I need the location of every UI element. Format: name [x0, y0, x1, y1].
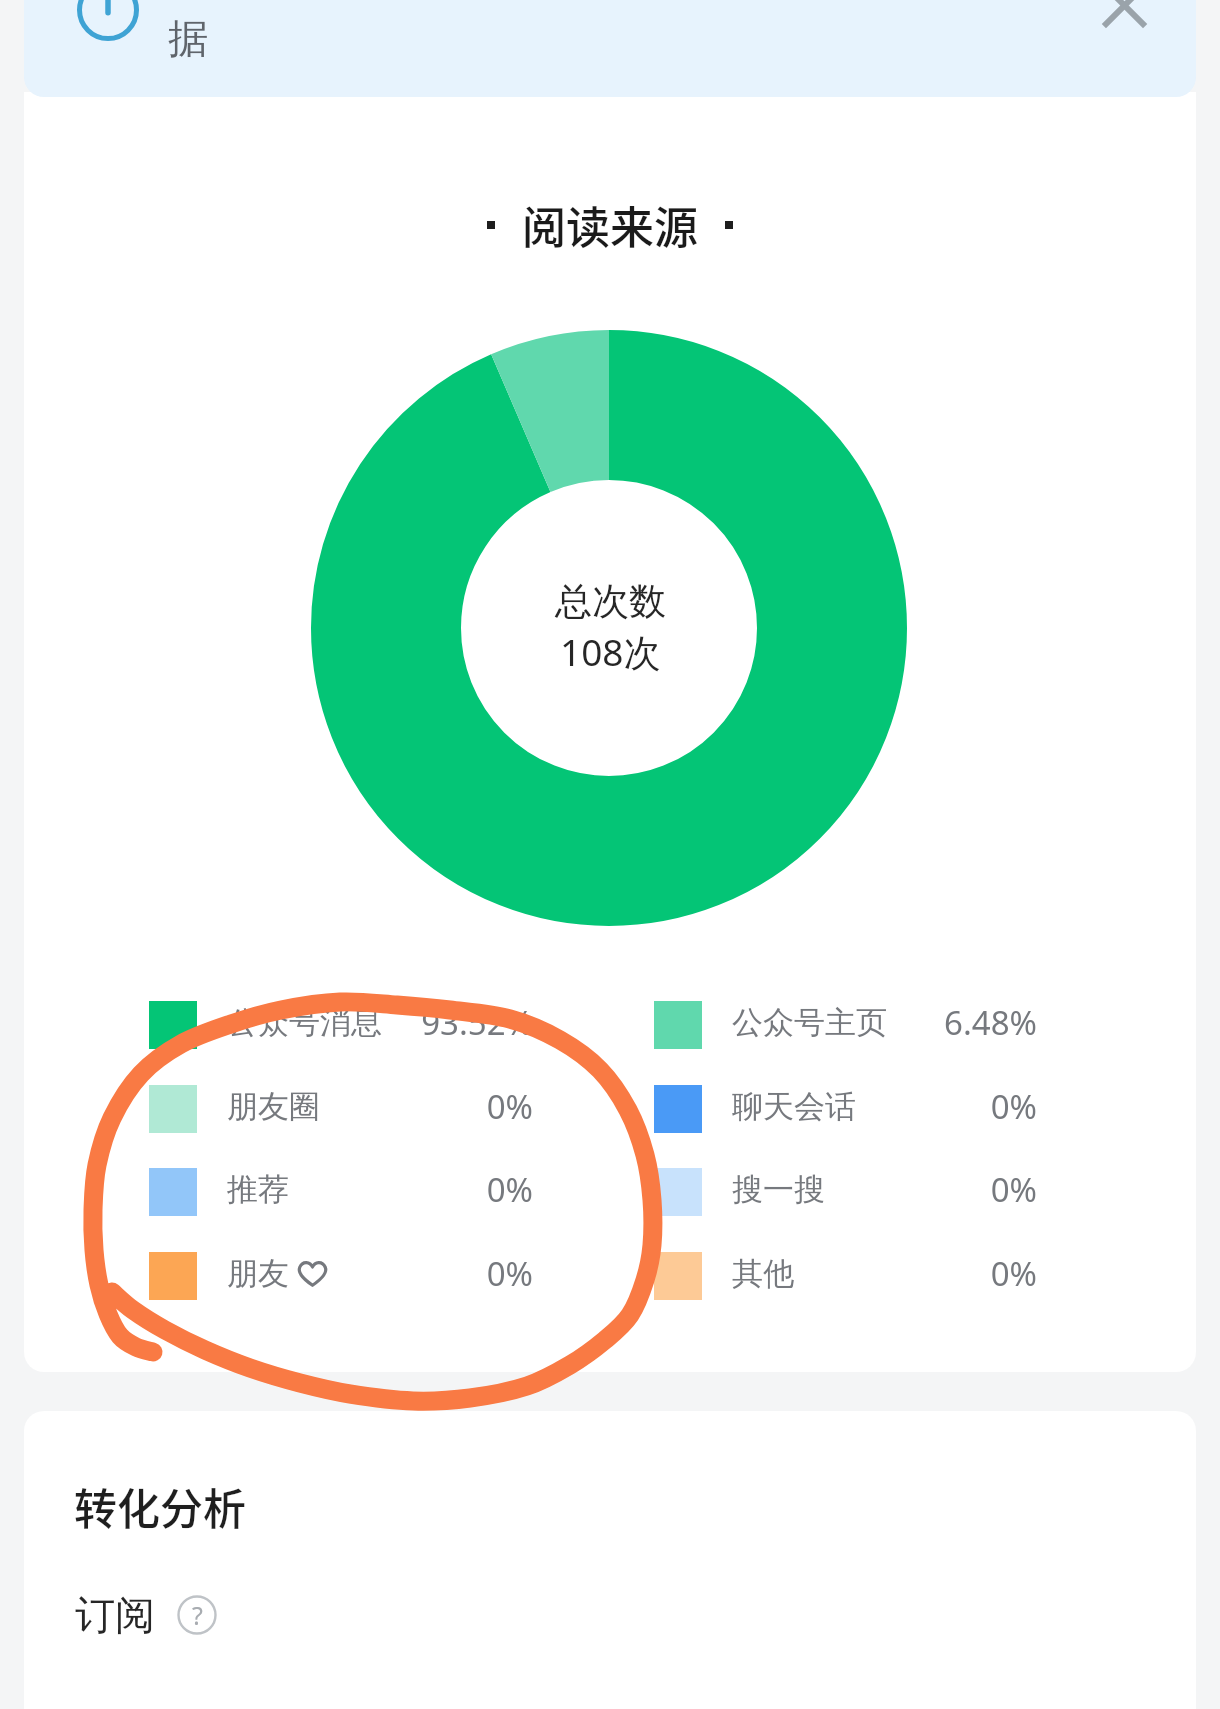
button[interactable]: 朋友: [227, 1238, 327, 1308]
staticText: 0%: [486, 1251, 533, 1296]
staticText: 聊天会话: [732, 1087, 856, 1126]
staticText: 0%: [990, 1084, 1037, 1129]
staticText: 阅读来源: [522, 193, 698, 257]
other: Close: [1106, 0, 1143, 24]
button[interactable]: 聊天会话: [732, 1071, 856, 1141]
button[interactable]: 搜一搜: [732, 1154, 825, 1224]
button[interactable]: [24, 0, 1196, 97]
button[interactable]: 推荐: [227, 1154, 289, 1224]
staticText: 108次: [560, 626, 661, 677]
staticText: 0%: [990, 1167, 1037, 1212]
staticText: 0%: [486, 1084, 533, 1129]
staticText: 0%: [486, 1167, 533, 1212]
button[interactable]: 其他: [732, 1238, 794, 1308]
other: Info: [77, 0, 139, 41]
button[interactable]: 公众号消息: [227, 987, 382, 1057]
staticText: 6.48%: [944, 1000, 1037, 1045]
staticText: 93.52%: [421, 1000, 533, 1045]
staticText: 订阅: [75, 1590, 155, 1640]
staticText: 朋友: [227, 1254, 289, 1293]
staticText: 总次数: [555, 578, 666, 625]
staticText: 转化分析: [74, 1475, 246, 1537]
staticText: 公众号消息: [227, 1003, 382, 1042]
staticText: 据: [168, 13, 208, 63]
staticText: 公众号主页: [732, 1003, 887, 1042]
button[interactable]: 公众号主页: [732, 987, 887, 1057]
staticText: 朋友圈: [227, 1087, 320, 1126]
staticText: 搜一搜: [732, 1170, 825, 1209]
staticText: 推荐: [227, 1170, 289, 1209]
button[interactable]: Help: [177, 1595, 217, 1635]
button[interactable]: 朋友圈: [227, 1071, 320, 1141]
staticText: ?: [192, 1598, 203, 1632]
staticText: 其他: [732, 1254, 794, 1293]
staticText: 0%: [990, 1251, 1037, 1296]
